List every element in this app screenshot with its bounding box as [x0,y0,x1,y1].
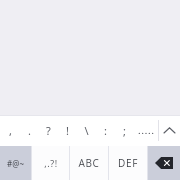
staticText: DEF [118,156,138,170]
staticText: ABC [78,156,100,170]
staticText: ? [46,123,51,138]
button[interactable]: \ [77,115,96,146]
staticText: #@~ [7,158,24,169]
button[interactable]: DEF [109,146,147,180]
button[interactable]: More symbols [134,115,158,146]
button[interactable]: ; [115,115,134,146]
button[interactable]: ! [58,115,77,146]
button[interactable]: . [20,115,39,146]
staticText: ; [123,123,126,138]
button[interactable]: Backspace [148,146,180,180]
button[interactable]: ABC [70,146,108,180]
button[interactable]: : [96,115,115,146]
button[interactable]: Expand suggestions [159,115,180,146]
staticText: \ [84,123,89,138]
staticText: ,.?! [44,157,58,169]
staticText: . [28,123,31,138]
button[interactable]: ? [39,115,58,146]
button[interactable]: #@~ [0,146,31,180]
staticText: : [104,123,107,138]
button[interactable]: ,.?! [32,146,69,180]
staticText: ! [66,123,69,138]
button[interactable]: , [0,115,20,146]
staticText: , [9,123,12,138]
